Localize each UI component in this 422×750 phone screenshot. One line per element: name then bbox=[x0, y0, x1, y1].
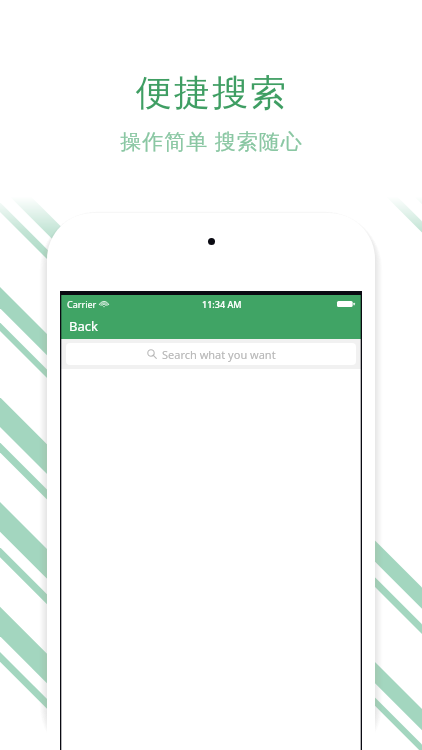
staticText: Search what you want bbox=[162, 347, 276, 362]
staticText: Carrier bbox=[67, 298, 97, 310]
staticText: 操作简单 搜索随心 bbox=[120, 127, 303, 156]
button[interactable]: Search what you want bbox=[66, 343, 356, 365]
staticText: Back bbox=[69, 317, 98, 335]
staticText: 便捷搜索 bbox=[135, 70, 287, 115]
staticText: 11:34 AM bbox=[202, 298, 242, 310]
button[interactable]: Back bbox=[65, 314, 102, 338]
